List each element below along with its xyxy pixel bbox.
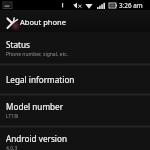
button[interactable]: Settings	[0, 10, 150, 32]
staticText: 4.0.3	[6, 145, 18, 150]
staticText: Phone number, signal, etc.	[6, 51, 68, 58]
other: Settings	[6, 17, 18, 29]
button[interactable]: Model number	[0, 95, 150, 126]
staticText: 3:26 am	[119, 1, 143, 10]
staticText: Model number	[6, 101, 64, 112]
staticText: Legal information	[6, 74, 75, 85]
staticText: LT18i	[6, 113, 19, 120]
button[interactable]: Legal information	[0, 65, 150, 94]
button[interactable]: Status	[0, 33, 150, 64]
button[interactable]: Android version	[0, 127, 150, 150]
staticText: Android version	[6, 133, 67, 144]
staticText: About phone	[20, 17, 66, 27]
staticText: Status	[6, 39, 30, 50]
